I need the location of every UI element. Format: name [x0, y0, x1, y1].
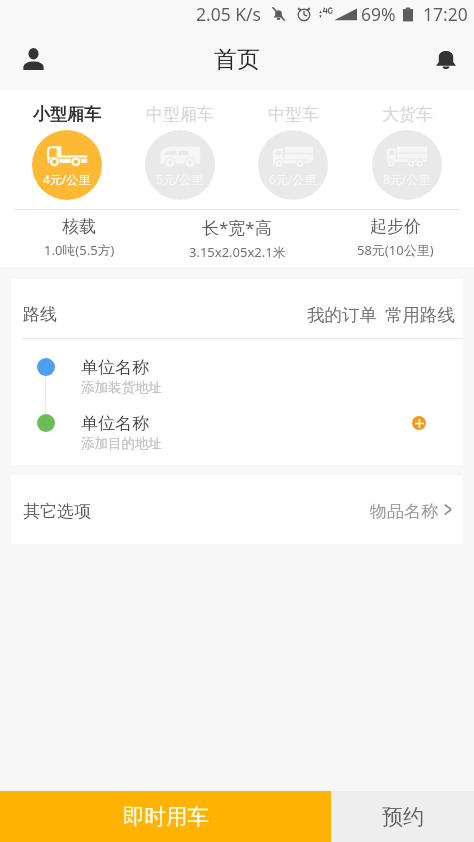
staticText: 添加目的地址	[81, 435, 162, 452]
staticText: 58元(10公里)	[357, 241, 434, 259]
staticText: 6元/公里	[269, 171, 317, 187]
staticText: 预约	[382, 804, 424, 830]
button[interactable]: 大货车	[350, 90, 464, 200]
staticText: 长*宽*高	[202, 216, 272, 239]
staticText: 路线	[23, 304, 57, 325]
staticText: 5元/公里	[156, 171, 204, 187]
button[interactable]: Add stop	[412, 416, 426, 430]
staticText: 其它选项	[23, 501, 91, 522]
button[interactable]: 常用路线	[381, 296, 459, 334]
button[interactable]: 预约	[331, 791, 474, 842]
staticText: 即时用车	[123, 803, 209, 830]
button[interactable]: 中型车	[236, 90, 350, 200]
staticText: 单位名称	[81, 357, 149, 378]
staticText: 中型厢车	[146, 104, 214, 125]
staticText: 核载	[62, 216, 96, 237]
button[interactable]: 单位名称	[11, 395, 463, 451]
staticText: 1.0吨(5.5方)	[44, 241, 115, 259]
button[interactable]: 其它选项	[11, 475, 463, 544]
button[interactable]: 即时用车	[0, 791, 331, 842]
staticText: 2.05 K/s	[196, 2, 261, 26]
staticText: 物品名称	[370, 501, 438, 522]
staticText: 常用路线	[385, 304, 455, 326]
staticText: 添加装货地址	[81, 379, 162, 396]
staticText: 8元/公里	[383, 171, 431, 187]
staticText: 中型车	[268, 104, 319, 125]
staticText: 起步价	[370, 216, 421, 237]
button[interactable]: 中型厢车	[123, 90, 236, 200]
button[interactable]: 单位名称	[11, 339, 463, 395]
button[interactable]: 小型厢车	[10, 90, 123, 200]
staticText: 首页	[214, 45, 260, 74]
staticText: 单位名称	[81, 413, 149, 434]
staticText: 17:20	[423, 2, 468, 26]
staticText: 大货车	[382, 104, 433, 125]
staticText: 3.15x2.05x2.1米	[189, 243, 286, 261]
staticText: 69%	[361, 2, 396, 26]
button[interactable]: Notifications	[424, 37, 468, 81]
button[interactable]: Profile	[11, 37, 55, 81]
button[interactable]: 我的订单	[303, 296, 381, 334]
staticText: 我的订单	[307, 304, 377, 326]
staticText: 4元/公里	[43, 171, 91, 187]
staticText: 小型厢车	[33, 104, 101, 125]
